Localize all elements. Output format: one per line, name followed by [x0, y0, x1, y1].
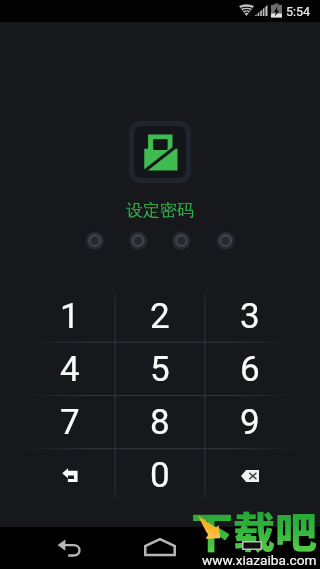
button[interactable]: 2 — [115, 289, 205, 343]
button[interactable]: 9 — [205, 396, 295, 449]
other: Backspace — [241, 470, 259, 482]
button[interactable]: 4 — [25, 343, 115, 396]
staticText: 8 — [150, 402, 170, 443]
button[interactable]: Recent apps — [221, 527, 279, 569]
staticText: 2 — [150, 296, 170, 337]
button[interactable]: Home — [131, 527, 189, 569]
staticText: 0 — [150, 455, 170, 496]
button[interactable]: Backspace — [205, 449, 295, 502]
button[interactable]: 3 — [205, 289, 295, 343]
staticText: 下载吧 — [191, 499, 318, 560]
button[interactable]: 6 — [205, 343, 295, 396]
button[interactable]: Enter — [25, 449, 115, 502]
staticText: 设定密码 — [0, 200, 320, 221]
button[interactable]: 8 — [115, 396, 205, 449]
button[interactable]: 7 — [25, 396, 115, 449]
button[interactable]: Back — [42, 527, 100, 569]
staticText: www.xiazaiba.com — [202, 552, 317, 568]
button[interactable]: 0 — [115, 449, 205, 502]
staticText: 7 — [60, 402, 80, 443]
staticText: 6 — [240, 349, 260, 390]
staticText: 3 — [240, 296, 260, 337]
staticText: 4 — [60, 349, 80, 390]
other: Enter — [62, 468, 79, 483]
staticText: 9 — [240, 402, 260, 443]
staticText: 5:54 — [286, 4, 311, 19]
button[interactable]: 1 — [25, 289, 115, 343]
button[interactable]: 5 — [115, 343, 205, 396]
staticText: 5 — [150, 349, 170, 390]
staticText: 1 — [60, 296, 80, 337]
